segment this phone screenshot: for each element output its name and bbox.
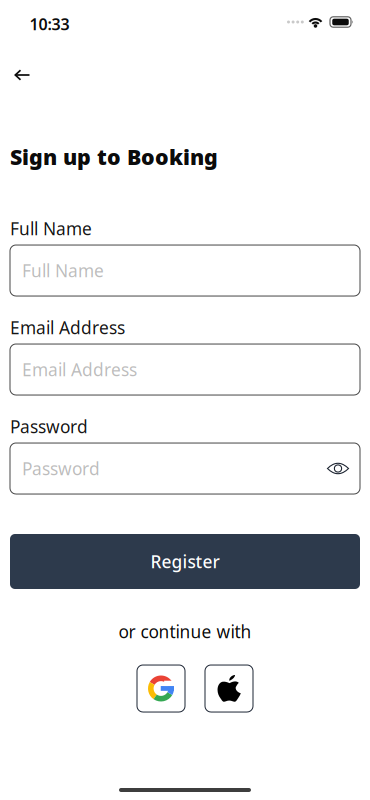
button[interactable]: Back <box>0 53 44 97</box>
button[interactable]: Full Name <box>10 245 360 296</box>
staticText: or continue with <box>118 620 251 643</box>
staticText: Email Address <box>10 316 125 339</box>
staticText: Password <box>22 457 100 480</box>
staticText: Register <box>150 550 219 573</box>
button[interactable]: Continue with Apple <box>205 665 253 712</box>
staticText: Email Address <box>22 358 137 381</box>
button[interactable]: Email Address <box>10 344 360 395</box>
button[interactable]: Register <box>10 534 360 589</box>
button[interactable]: Password <box>10 443 360 494</box>
staticText: Sign up to Booking <box>10 142 218 171</box>
staticText: Full Name <box>22 259 104 282</box>
staticText: Full Name <box>10 217 92 240</box>
button[interactable]: Continue with Google <box>137 665 185 712</box>
button[interactable]: Show password <box>326 456 350 480</box>
staticText: Password <box>10 415 88 438</box>
staticText: 10:33 <box>29 13 69 35</box>
